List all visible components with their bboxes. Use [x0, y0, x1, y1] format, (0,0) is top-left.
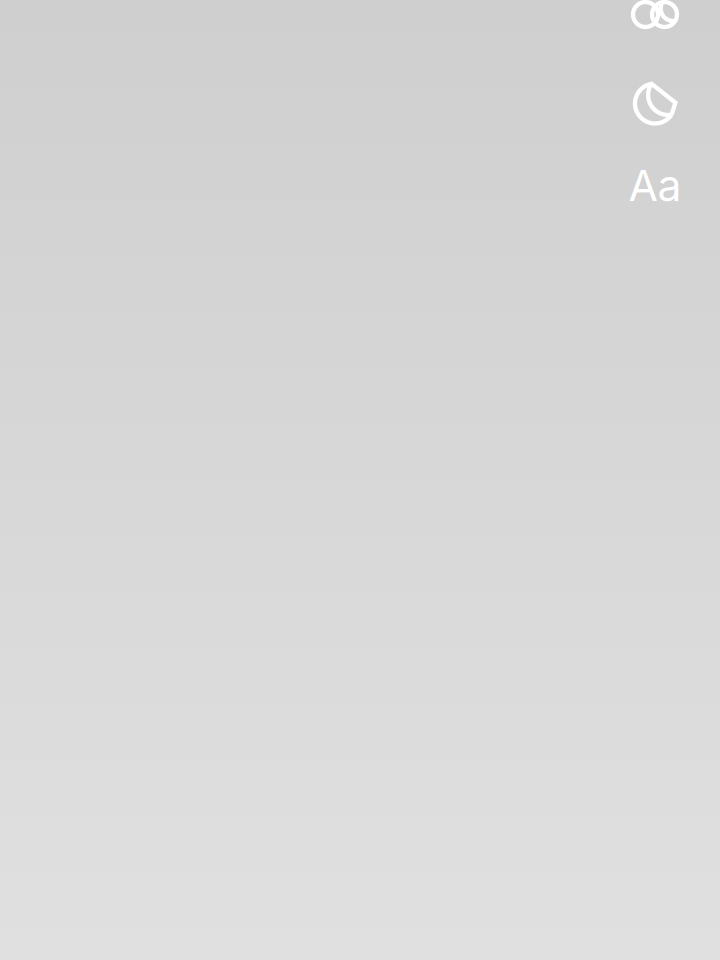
- staticText: Aa: [628, 160, 681, 211]
- button[interactable]: Stickers: [630, 0, 680, 37]
- button[interactable]: Add sticker: [633, 81, 677, 125]
- button[interactable]: Aa: [627, 163, 683, 207]
